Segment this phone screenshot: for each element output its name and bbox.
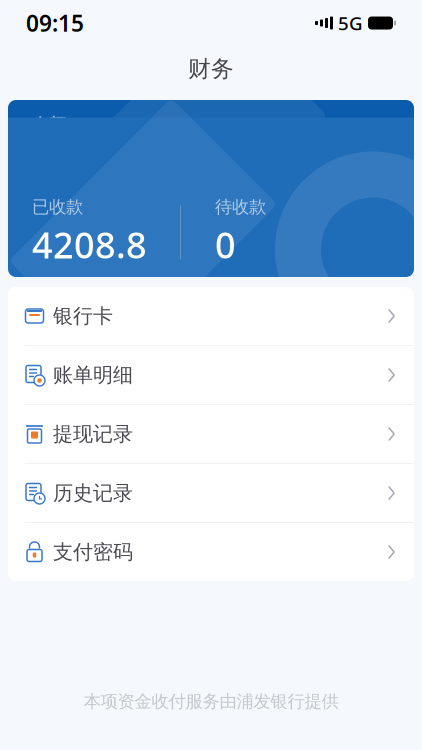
staticText: 09:15 bbox=[26, 8, 84, 38]
staticText: 本项资金收付服务由浦发银行提供 bbox=[83, 691, 338, 712]
staticText: 4208.8 bbox=[32, 221, 147, 268]
button[interactable]: 银行卡 bbox=[8, 287, 414, 346]
staticText: 待收款 bbox=[215, 196, 266, 218]
staticText: 历史记录 bbox=[53, 481, 133, 505]
staticText: 支付密码 bbox=[53, 540, 133, 564]
button[interactable]: 账单明细 bbox=[8, 346, 414, 405]
button[interactable]: 历史记录 bbox=[8, 464, 414, 523]
button[interactable]: 提现记录 bbox=[8, 405, 414, 464]
staticText: 5G bbox=[338, 11, 363, 35]
staticText: 银行卡 bbox=[53, 304, 113, 328]
button[interactable]: 支付密码 bbox=[8, 523, 414, 581]
staticText: 提现记录 bbox=[53, 422, 133, 446]
staticText: 0 bbox=[215, 221, 236, 268]
staticText: 金额 bbox=[32, 114, 66, 135]
staticText: 已收款 bbox=[32, 196, 83, 218]
staticText: 账单明细 bbox=[53, 363, 133, 387]
staticText: 财务 bbox=[188, 55, 234, 83]
